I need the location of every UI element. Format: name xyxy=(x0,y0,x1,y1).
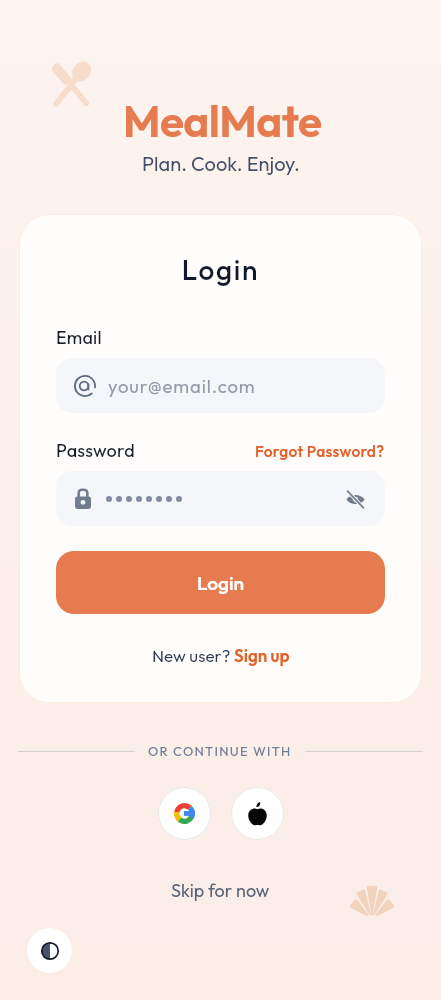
button[interactable]: Toggle theme xyxy=(27,928,72,973)
button[interactable]: Sign up xyxy=(234,645,290,666)
staticText: Login xyxy=(197,571,245,595)
staticText: Sign up xyxy=(234,645,290,666)
button[interactable]: Show password xyxy=(56,471,385,526)
staticText: New user? xyxy=(152,645,234,666)
staticText: Email xyxy=(56,326,102,349)
staticText: Login xyxy=(56,252,385,287)
staticText: OR CONTINUE WITH xyxy=(148,743,292,759)
button[interactable]: Sign in with Apple xyxy=(231,787,284,840)
staticText: Skip for now xyxy=(171,879,270,902)
button[interactable]: Show password xyxy=(342,486,368,512)
staticText: Forgot Password? xyxy=(255,441,385,461)
staticText: Password xyxy=(56,439,135,462)
staticText: MealMate xyxy=(123,93,322,148)
button[interactable]: Login xyxy=(56,551,385,614)
button[interactable]: Skip for now xyxy=(171,879,270,902)
button[interactable]: your@email.com xyxy=(56,358,385,413)
staticText: Plan. Cook. Enjoy. xyxy=(142,151,300,176)
staticText: your@email.com xyxy=(108,374,256,397)
button[interactable]: Sign in with Google xyxy=(158,787,211,840)
button[interactable]: Forgot Password? xyxy=(255,441,385,461)
